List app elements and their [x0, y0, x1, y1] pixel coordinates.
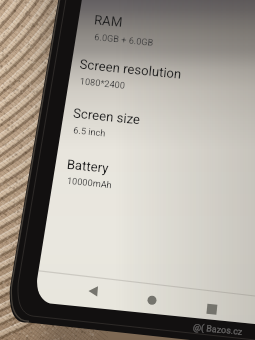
button[interactable]: Device specification screen — [0, 0, 255, 340]
